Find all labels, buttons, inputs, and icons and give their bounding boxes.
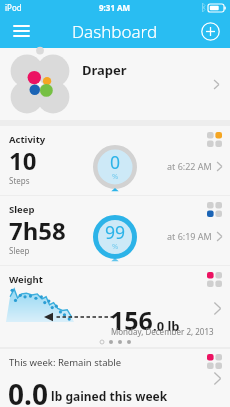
staticText: .0 lb: [153, 317, 180, 335]
staticText: lb gained this week: [48, 388, 168, 404]
staticText: Sleep: [9, 203, 35, 216]
button[interactable]: Add: [197, 18, 223, 44]
staticText: Steps: [9, 175, 30, 186]
staticText: %: [112, 171, 119, 181]
staticText: 0: [110, 150, 121, 174]
button[interactable]: Activity: [0, 126, 230, 195]
staticText: Activity: [9, 133, 46, 146]
staticText: at 6:22 AM: [167, 160, 212, 172]
button[interactable]: Sleep: [0, 196, 230, 265]
staticText: 0.0: [8, 375, 48, 407]
staticText: Draper: [82, 61, 127, 79]
staticText: iPod: [5, 2, 22, 13]
staticText: 9:31 AM: [99, 2, 131, 13]
button[interactable]: Weight: [0, 266, 230, 347]
staticText: Monday, December 2, 2013: [111, 326, 214, 337]
button[interactable]: This week: Remain stable: [0, 349, 230, 407]
staticText: This week: Remain stable: [9, 356, 122, 369]
staticText: 7h58: [9, 214, 66, 247]
staticText: Dashboard: [72, 20, 158, 43]
staticText: at 6:19 AM: [167, 230, 212, 242]
staticText: Sleep: [9, 245, 30, 256]
button[interactable]: Draper: [0, 48, 230, 120]
button[interactable]: Menu: [8, 18, 34, 44]
staticText: 99: [105, 220, 126, 244]
staticText: %: [112, 241, 119, 251]
staticText: Weight: [9, 273, 43, 286]
staticText: 10: [9, 144, 37, 177]
staticText: 156: [110, 303, 153, 337]
